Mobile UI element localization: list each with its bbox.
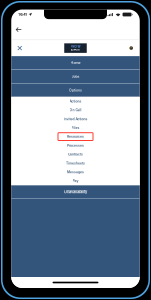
staticText: Resources bbox=[67, 135, 84, 139]
button[interactable]: Home bbox=[11, 56, 140, 69]
staticText: 16:41 bbox=[18, 12, 27, 17]
button[interactable]: Options bbox=[11, 83, 140, 97]
button[interactable]: Messages bbox=[11, 168, 140, 176]
staticText: Contracts bbox=[68, 152, 83, 156]
staticText: Home bbox=[70, 61, 80, 65]
staticText: SUPPORT bbox=[70, 49, 80, 51]
staticText: Messages bbox=[67, 170, 84, 174]
button[interactable]: Invited Actions bbox=[11, 114, 140, 123]
button[interactable]: Pro Support home bbox=[64, 43, 87, 53]
button[interactable]: Processes bbox=[11, 141, 140, 150]
button[interactable]: Close bbox=[15, 44, 24, 53]
button[interactable]: Back bbox=[14, 25, 23, 34]
button[interactable]: Pay bbox=[11, 176, 140, 185]
staticText: Pay bbox=[72, 179, 78, 183]
button[interactable]: Files bbox=[11, 123, 140, 132]
button[interactable]: Account bbox=[127, 44, 136, 53]
staticText: Jobs bbox=[71, 74, 79, 79]
button[interactable]: Timesheets bbox=[11, 159, 140, 167]
staticText: Files bbox=[71, 126, 79, 130]
staticText: Timesheets bbox=[66, 161, 85, 165]
button[interactable]: Unavailability bbox=[11, 185, 140, 199]
staticText: Invited Actions bbox=[63, 117, 87, 121]
staticText: Unavailability bbox=[64, 190, 87, 194]
staticText: Options bbox=[69, 88, 82, 92]
button[interactable]: Resources bbox=[11, 132, 140, 141]
button[interactable]: Actions bbox=[11, 97, 140, 106]
button[interactable]: Jobs bbox=[11, 70, 140, 83]
staticText: PRO W bbox=[70, 45, 80, 48]
button[interactable]: Contracts bbox=[11, 150, 140, 159]
button[interactable]: On Call bbox=[11, 106, 140, 114]
staticText: On Call bbox=[69, 108, 81, 112]
staticText: Actions bbox=[69, 99, 81, 103]
staticText: Processes bbox=[67, 143, 84, 147]
